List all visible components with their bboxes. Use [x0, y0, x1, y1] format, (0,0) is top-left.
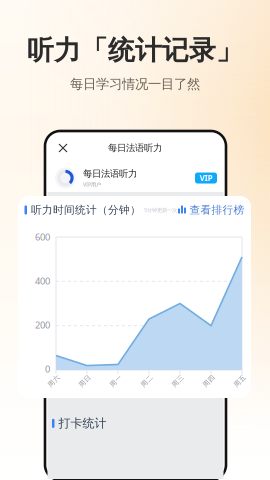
- button[interactable]: VIP: [195, 172, 217, 183]
- staticText: VIP: [199, 173, 212, 183]
- staticText: 周二: [140, 377, 154, 385]
- button[interactable]: 查看排行榜: [177, 203, 244, 216]
- staticText: 周三: [171, 377, 185, 385]
- staticText: 听力「统计记录」: [27, 34, 243, 67]
- button[interactable]: 关闭: [54, 139, 72, 157]
- staticText: 每日法语听力: [108, 142, 162, 154]
- staticText: 周一: [109, 377, 123, 385]
- staticText: 周五: [233, 377, 247, 385]
- staticText: 查看排行榜: [189, 203, 244, 216]
- staticText: 每日学习情况一目了然: [70, 76, 200, 92]
- staticText: 打卡统计: [58, 416, 106, 431]
- staticText: 周六: [47, 377, 61, 385]
- staticText: 0: [45, 363, 50, 375]
- staticText: VIP用户: [83, 181, 101, 188]
- staticText: 周日: [78, 377, 92, 385]
- staticText: 600: [35, 231, 50, 243]
- staticText: 200: [35, 319, 50, 331]
- staticText: 每日法语听力: [83, 168, 137, 179]
- staticText: 5分钟更新一次: [144, 206, 177, 214]
- staticText: 400: [35, 275, 50, 287]
- staticText: 听力时间统计（分钟）: [31, 203, 141, 216]
- staticText: 周四: [202, 377, 216, 385]
